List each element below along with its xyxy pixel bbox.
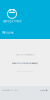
staticText: EMERGENCY CALL <box>2 89 18 91</box>
staticText: cyanogenmod <box>2 19 21 23</box>
staticText: English (United Kingdom) <box>12 61 38 64</box>
staticText: English (United States) <box>16 70 34 72</box>
staticText: ▶ <box>46 89 48 91</box>
staticText: English (Singapore) <box>15 53 34 56</box>
button[interactable]: EMERGENCY CALL <box>0 87 18 93</box>
button[interactable]: English (Singapore) <box>0 50 50 58</box>
staticText: NEXT <box>40 88 45 92</box>
button[interactable]: NEXT <box>40 87 50 93</box>
button[interactable]: English (United Kingdom) <box>0 58 50 67</box>
staticText: Welcome <box>2 31 14 35</box>
